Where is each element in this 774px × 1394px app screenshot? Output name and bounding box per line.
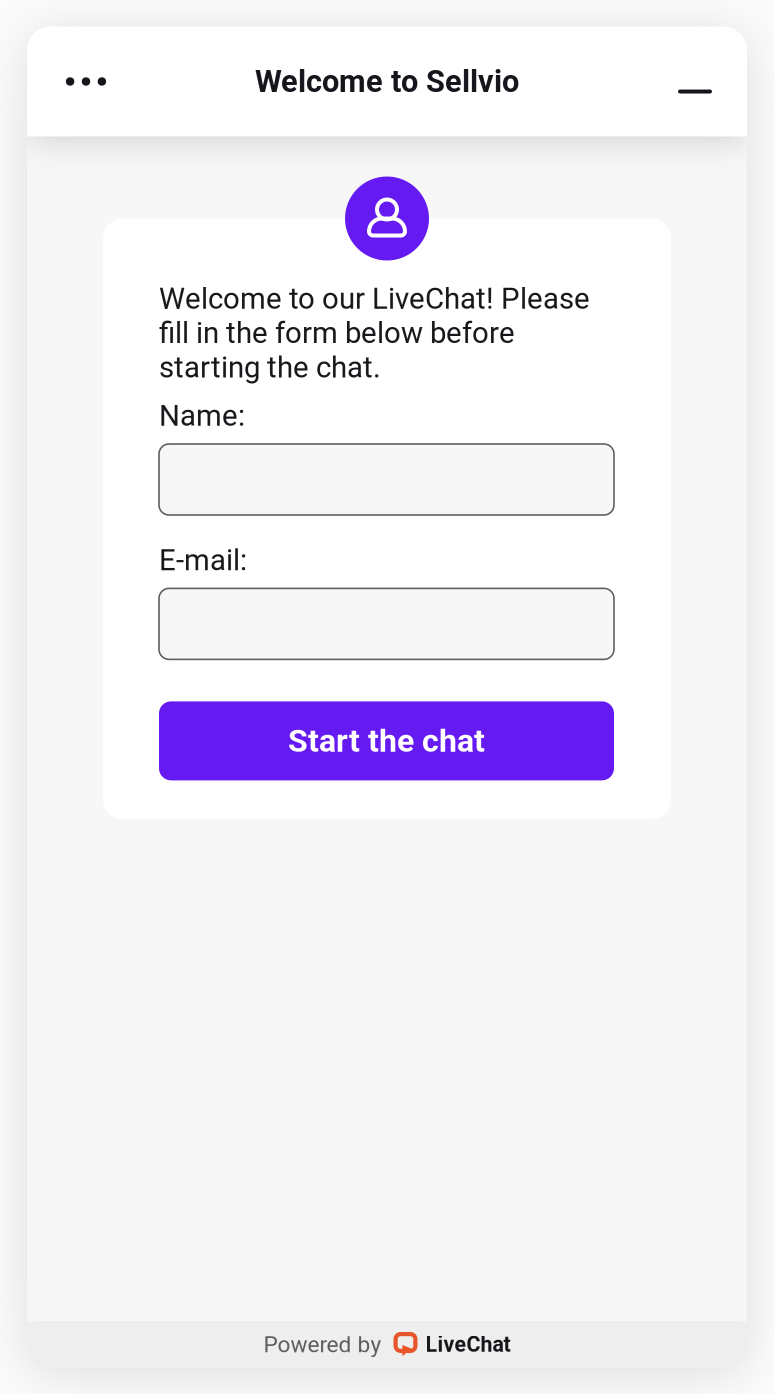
staticText: Name:: [159, 399, 245, 433]
staticText: Welcome to Sellvio: [255, 63, 519, 99]
staticText: Powered by: [263, 1331, 381, 1358]
staticText: LiveChat: [425, 1332, 510, 1357]
staticText: E-mail:: [159, 543, 247, 577]
button[interactable]: Start the chat: [159, 701, 614, 780]
button[interactable]: More options: [47, 44, 125, 118]
staticText: Start the chat: [288, 722, 485, 760]
button[interactable]: Minimize: [656, 34, 734, 128]
staticText: Welcome to our LiveChat! Please fill in …: [159, 281, 590, 385]
